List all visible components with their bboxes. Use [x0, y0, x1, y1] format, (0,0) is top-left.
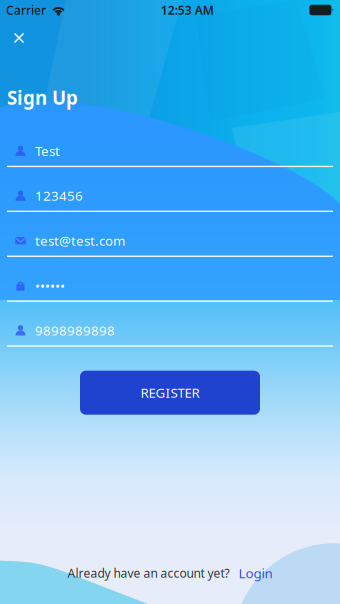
button[interactable]: REGISTER — [80, 371, 260, 415]
staticText: Login — [238, 564, 272, 582]
button[interactable]: Login — [238, 564, 272, 582]
staticText: Sign Up — [7, 85, 78, 110]
staticText: 123456 — [35, 187, 83, 204]
staticText: 9898989898 — [35, 321, 115, 339]
staticText: Test — [35, 142, 60, 160]
staticText: Already have an account yet? — [67, 565, 229, 581]
staticText: •••••• — [35, 277, 65, 294]
staticText: REGISTER — [140, 384, 199, 401]
staticText: Carrier — [6, 2, 46, 18]
staticText: test@test.com — [35, 232, 125, 249]
button[interactable]: Close — [0, 23, 38, 53]
staticText: 12:53 AM — [161, 2, 214, 18]
